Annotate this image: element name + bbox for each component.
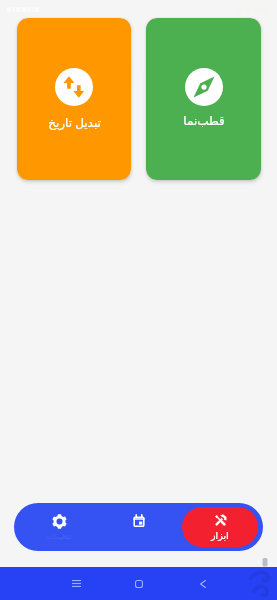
staticText: تبدیل تاریخ [48,114,101,130]
staticText: تنظیمات [47,533,72,541]
staticText: ابزار [211,530,229,541]
button[interactable]: قطب‌نما [146,18,261,180]
button[interactable]: Back [188,567,217,600]
button[interactable]: تبدیل تاریخ [17,18,131,180]
button[interactable]: Recent apps [62,567,90,600]
button[interactable]: Calendar [125,503,153,539]
button[interactable]: Home [124,567,153,600]
button[interactable]: Settings [45,503,73,539]
staticText: قطب‌نما [183,114,225,128]
button[interactable]: ابزار [182,507,258,547]
